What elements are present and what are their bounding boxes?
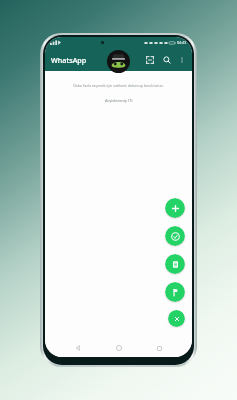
staticText: WhatsApp [51,55,87,65]
button[interactable]: Scan [144,54,156,66]
button[interactable]: Status [165,226,185,246]
button[interactable]: Label [165,282,185,302]
button[interactable]: Arşivlenmiş (1) [45,98,192,103]
button[interactable]: Home [111,340,127,356]
button[interactable]: Close [168,310,185,327]
staticText: Arşivlenmiş (1) [105,98,133,103]
staticText: 04:43 [177,40,187,45]
button[interactable]: New note [165,254,185,274]
button[interactable]: New chat [165,198,185,218]
button[interactable]: More options [176,54,187,65]
button[interactable]: Search [161,54,173,66]
button[interactable]: Recents [151,340,167,356]
staticText: Daha fazla seçenek için sohbete dokunup … [58,83,179,88]
button[interactable]: Back [70,340,86,356]
